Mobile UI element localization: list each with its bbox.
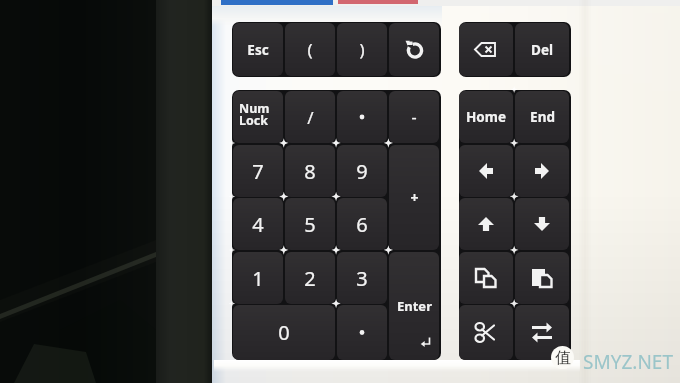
button[interactable]: 6 <box>337 198 387 250</box>
button[interactable]: period <box>337 305 387 360</box>
button[interactable]: 9 <box>337 145 387 197</box>
staticText: 5 <box>304 211 316 238</box>
staticText: Lock <box>239 112 269 129</box>
button[interactable]: / <box>285 91 335 143</box>
staticText: ( <box>307 38 313 61</box>
staticText: Esc <box>247 41 269 59</box>
staticText: - <box>411 106 417 128</box>
staticText: ) <box>359 38 365 61</box>
button[interactable]: Swap <box>515 305 569 360</box>
button[interactable]: Down <box>515 198 569 250</box>
button[interactable]: Up <box>459 198 513 250</box>
button[interactable]: Cut <box>459 305 513 360</box>
button[interactable]: dot <box>337 91 387 143</box>
button[interactable]: 4 <box>233 198 283 250</box>
staticText: 7 <box>252 158 264 185</box>
staticText: 值 <box>555 348 571 368</box>
staticText: End <box>530 108 555 126</box>
button[interactable]: 8 <box>285 145 335 197</box>
staticText: 1 <box>252 265 264 292</box>
button[interactable]: 7 <box>233 145 283 197</box>
staticText: 0 <box>278 319 290 346</box>
button[interactable]: 3 <box>337 252 387 304</box>
button[interactable]: + <box>389 145 439 250</box>
staticText: SMYZ.NET <box>583 349 673 375</box>
button[interactable]: Home <box>459 91 513 143</box>
button[interactable]: Del <box>515 23 569 76</box>
staticText: 3 <box>356 265 368 292</box>
button[interactable]: Backspace <box>459 23 513 76</box>
button[interactable]: 2 <box>285 252 335 304</box>
button[interactable]: Enter <box>389 252 439 360</box>
staticText: 8 <box>304 158 316 185</box>
staticText: Home <box>466 108 506 126</box>
button[interactable]: End <box>515 91 569 143</box>
staticText: 2 <box>304 265 316 292</box>
staticText: Del <box>531 41 553 59</box>
staticText: Enter <box>397 297 432 315</box>
button[interactable]: Num <box>233 91 283 143</box>
button[interactable]: Undo <box>389 23 439 76</box>
staticText: 9 <box>356 158 368 185</box>
button[interactable]: - <box>389 91 439 143</box>
button[interactable]: Esc <box>233 23 283 76</box>
button[interactable]: 5 <box>285 198 335 250</box>
staticText: Num <box>239 100 270 117</box>
staticText: / <box>307 106 314 129</box>
button[interactable]: Left <box>459 145 513 197</box>
button[interactable]: Paste <box>515 252 569 304</box>
button[interactable]: ( <box>285 23 335 76</box>
button[interactable]: 1 <box>233 252 283 304</box>
button[interactable]: 0 <box>233 305 335 360</box>
staticText: 6 <box>356 211 368 238</box>
button[interactable]: ) <box>337 23 387 76</box>
staticText: 4 <box>252 211 264 238</box>
staticText: + <box>410 188 419 207</box>
button[interactable]: Copy <box>459 252 513 304</box>
button[interactable]: Right <box>515 145 569 197</box>
